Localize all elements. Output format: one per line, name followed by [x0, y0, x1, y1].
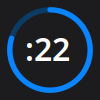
button[interactable]: Pause timer, 22 seconds remaining	[0, 0, 100, 100]
staticText: :22	[25, 27, 70, 70]
